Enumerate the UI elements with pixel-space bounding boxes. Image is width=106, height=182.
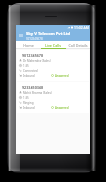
staticText: 9012345678	[22, 53, 44, 58]
staticText: Connected	[23, 69, 38, 73]
staticText: 9212345678	[26, 37, 43, 41]
staticText: Answered	[55, 106, 69, 110]
button[interactable]: Open navigation menu	[16, 30, 26, 41]
staticText: Mohit Sharma (Sales)	[23, 91, 52, 95]
staticText: Ringing	[23, 101, 34, 105]
staticText: 1:35	[23, 96, 29, 100]
button[interactable]: Call Details	[65, 41, 90, 49]
staticText: Dr Mahendra (Sales)	[23, 59, 51, 63]
button[interactable]: Live Calls	[40, 41, 65, 49]
staticText: 11:02 AM	[74, 25, 89, 30]
staticText: Answered	[55, 74, 69, 78]
staticText: 9233450348	[22, 85, 44, 90]
staticText: Sky V Telecom Pvt Ltd	[26, 31, 71, 37]
button[interactable]: 9233450348	[17, 82, 89, 113]
button[interactable]: 9012345678	[17, 50, 89, 81]
staticText: Inbound	[23, 106, 35, 110]
button[interactable]: Home	[16, 41, 40, 49]
staticText: 1:35	[23, 64, 29, 68]
staticText: Call Details	[68, 43, 88, 48]
staticText: Inbound	[23, 74, 35, 78]
staticText: Home	[23, 43, 34, 48]
staticText: Live Calls	[45, 43, 61, 48]
